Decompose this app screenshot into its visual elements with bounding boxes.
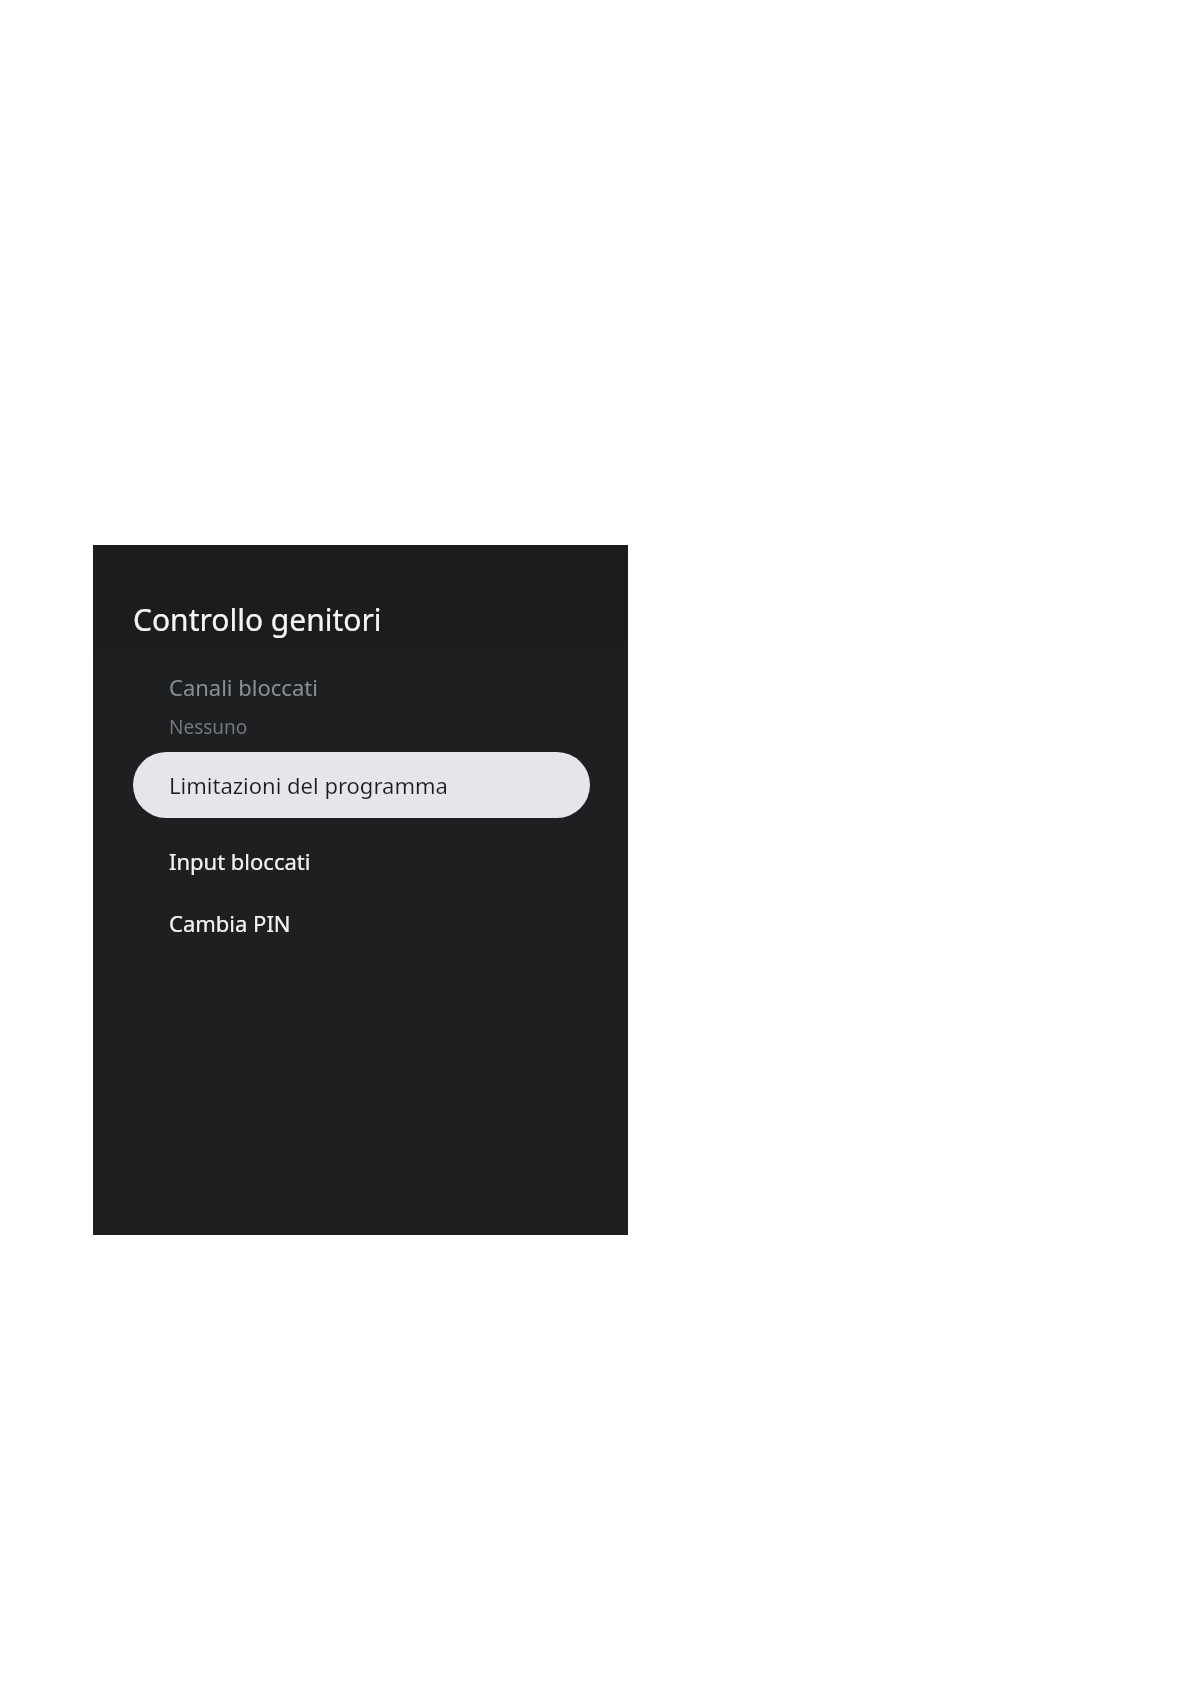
staticText: Controllo genitori xyxy=(133,599,382,640)
button[interactable]: Limitazioni del programma xyxy=(133,752,590,818)
button[interactable]: Cambia PIN xyxy=(93,892,628,954)
button[interactable]: Canali bloccati xyxy=(93,660,628,752)
staticText: Cambia PIN xyxy=(169,908,291,938)
staticText: Canali bloccati xyxy=(169,672,318,702)
staticText: Input bloccati xyxy=(169,846,311,876)
button[interactable]: Input bloccati xyxy=(93,830,628,892)
staticText: Limitazioni del programma xyxy=(169,770,448,800)
staticText: Nessuno xyxy=(169,714,248,740)
